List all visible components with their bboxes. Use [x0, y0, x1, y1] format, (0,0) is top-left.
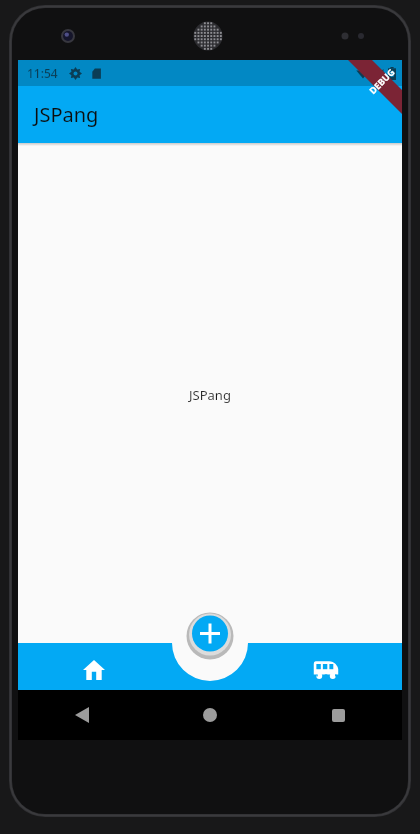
staticText: JSPang: [189, 386, 231, 404]
button[interactable]: Recents: [274, 690, 402, 740]
button[interactable]: Home: [146, 690, 274, 740]
button[interactable]: Add: [177, 610, 243, 657]
button[interactable]: Shuttle: [250, 643, 402, 690]
button[interactable]: Back: [18, 690, 146, 740]
button[interactable]: Home: [18, 643, 170, 690]
staticText: JSPang: [34, 101, 99, 128]
staticText: DEBUG: [366, 66, 397, 96]
staticText: 11:54: [27, 65, 58, 81]
